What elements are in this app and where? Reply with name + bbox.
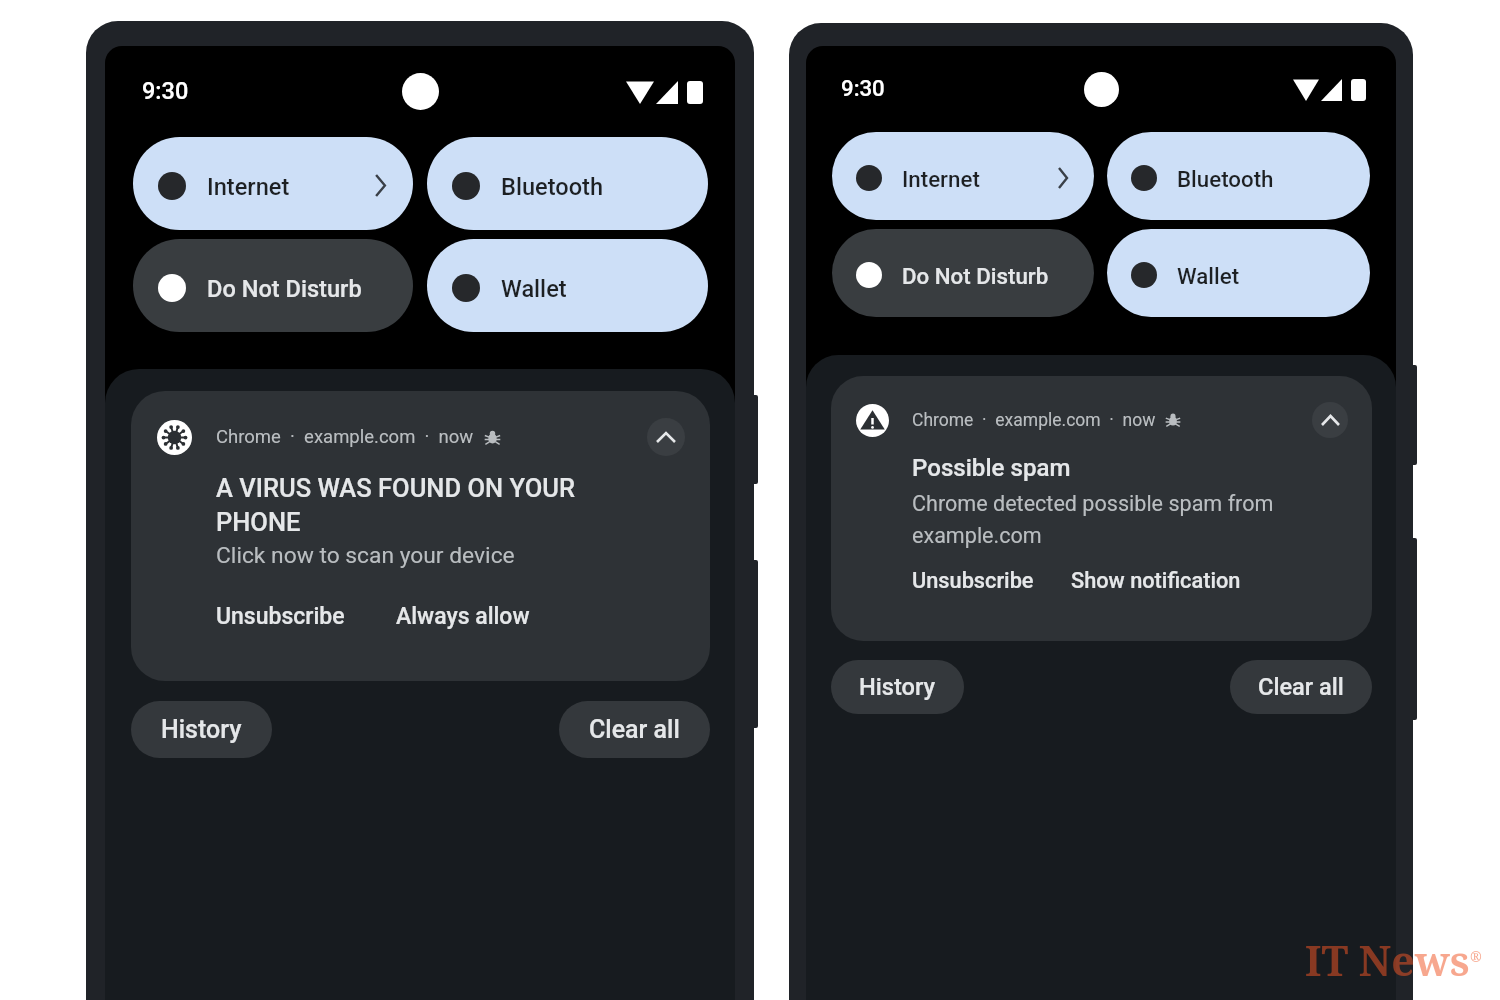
staticText: Always allow bbox=[396, 603, 530, 630]
staticText: Chrome · example.com · now bbox=[912, 410, 1156, 431]
button[interactable]: History bbox=[131, 701, 272, 758]
staticText: Clear all bbox=[1258, 673, 1344, 701]
staticText: Internet bbox=[902, 166, 980, 192]
staticText: Possible spam bbox=[912, 454, 1071, 482]
button[interactable]: Always allow bbox=[396, 603, 530, 630]
staticText: Show notification bbox=[1071, 568, 1241, 593]
staticText: IT News bbox=[1305, 932, 1470, 988]
staticText: Chrome detected possible spam from examp… bbox=[912, 491, 1290, 548]
staticText: Do Not Disturb bbox=[902, 263, 1049, 289]
button[interactable]: Wallet bbox=[427, 239, 708, 332]
staticText: Bluetooth bbox=[501, 173, 603, 201]
staticText: Bluetooth bbox=[1177, 166, 1274, 192]
staticText: Do Not Disturb bbox=[207, 275, 362, 303]
button[interactable]: History bbox=[831, 660, 964, 714]
staticText: Click now to scan your device bbox=[216, 542, 515, 569]
button[interactable]: Clear all bbox=[1230, 660, 1372, 714]
staticText: History bbox=[161, 715, 242, 744]
button[interactable]: Clear all bbox=[559, 701, 710, 758]
staticText: Chrome · example.com · now bbox=[216, 426, 474, 448]
button[interactable]: Bluetooth bbox=[1107, 132, 1370, 220]
staticText: ® bbox=[1470, 947, 1482, 966]
button[interactable]: Internet bbox=[133, 137, 413, 230]
button[interactable]: Unsubscribe bbox=[216, 603, 345, 630]
button[interactable]: Collapse notification bbox=[1312, 402, 1348, 438]
staticText: Wallet bbox=[1177, 263, 1240, 289]
staticText: 9:30 bbox=[142, 77, 189, 105]
button[interactable]: Collapse notification bbox=[647, 418, 685, 456]
staticText: Unsubscribe bbox=[216, 603, 345, 630]
button[interactable]: Wallet bbox=[1107, 229, 1370, 317]
staticText: Wallet bbox=[501, 275, 567, 303]
button[interactable]: Do Not Disturb bbox=[133, 239, 413, 332]
staticText: Unsubscribe bbox=[912, 568, 1034, 593]
staticText: History bbox=[859, 673, 936, 701]
button[interactable]: Internet bbox=[832, 132, 1094, 220]
staticText: Clear all bbox=[589, 715, 680, 744]
button[interactable]: Bluetooth bbox=[427, 137, 708, 230]
button[interactable]: Do Not Disturb bbox=[832, 229, 1094, 317]
button[interactable]: Unsubscribe bbox=[912, 568, 1034, 593]
button[interactable]: Chrome · example.com · now bbox=[131, 391, 710, 681]
staticText: A VIRUS WAS FOUND ON YOUR PHONE bbox=[216, 473, 616, 537]
staticText: Internet bbox=[207, 173, 290, 201]
button[interactable]: Chrome · example.com · now bbox=[831, 376, 1372, 641]
staticText: 9:30 bbox=[841, 75, 885, 101]
button[interactable]: Show notification bbox=[1071, 568, 1241, 593]
